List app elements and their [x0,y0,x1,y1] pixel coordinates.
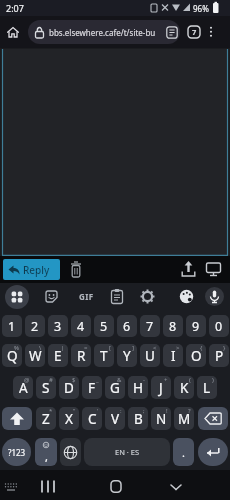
button[interactable] [3,481,19,493]
staticText: GIF [79,291,94,302]
button[interactable]: F [82,376,102,399]
button[interactable]: 5 [94,315,114,337]
staticText: D [64,379,74,397]
staticText: ; [143,407,145,415]
button[interactable]: 8 [163,315,183,337]
button[interactable]: S [36,376,56,399]
button[interactable]: W [25,344,45,367]
button[interactable]: E [48,344,68,367]
staticText: 2:07 [6,2,24,14]
staticText: E [54,347,62,365]
button[interactable]: B [128,407,148,430]
button[interactable]: 1 [2,315,22,337]
staticText: 9 [192,318,200,335]
staticText: Y [123,347,131,365]
button[interactable]: X [59,407,79,430]
button[interactable]: O [186,344,206,367]
staticText: : [120,407,122,415]
button[interactable] [204,22,218,42]
button[interactable]: ?123 [2,438,31,466]
staticText: J [159,379,163,397]
button[interactable]: , [35,438,57,466]
button[interactable]: GIF [75,289,97,303]
staticText: Z [42,410,50,428]
button[interactable]: T [94,344,114,367]
button[interactable]: H [128,376,148,399]
staticText: + [164,376,168,384]
button[interactable] [179,289,194,304]
button[interactable]: M [174,407,194,430]
button[interactable] [5,285,29,309]
button[interactable]: 6 [117,315,137,337]
staticText: 3 [54,318,62,335]
button[interactable]: I [163,344,183,367]
staticText: W [29,347,42,365]
button[interactable]: bbs.elsewhere.cafe/t/site-bu [28,20,180,44]
button[interactable] [108,480,124,493]
button[interactable]: 7 [187,25,201,39]
staticText: ? [188,407,191,415]
button[interactable] [168,482,184,492]
button[interactable] [198,438,228,466]
button[interactable] [205,261,222,278]
staticText: 1 [8,318,16,335]
button[interactable]: P [209,344,229,367]
staticText: _ [96,376,99,384]
button[interactable] [38,480,58,493]
staticText: X [65,410,73,428]
staticText: Reply [23,263,50,277]
staticText: \ [39,344,42,352]
staticText: [ [109,344,111,352]
staticText: A [19,379,28,397]
staticText: B [134,410,143,428]
button[interactable]: L [197,376,217,399]
button[interactable]: 2 [25,315,45,337]
staticText: I [171,347,176,365]
staticText: bbs.elsewhere.cafe/t/site-bu [49,27,156,38]
button[interactable] [110,288,124,305]
button[interactable]: Z [36,407,56,430]
staticText: * [49,407,53,415]
button[interactable]: Reply [3,259,60,280]
button[interactable] [6,25,20,40]
staticText: { [200,344,203,352]
button[interactable]: 9 [186,315,206,337]
button[interactable] [205,287,224,306]
button[interactable]: V [105,407,125,430]
button[interactable]: R [71,344,91,367]
button[interactable]: J [151,376,171,399]
staticText: ! [166,407,168,415]
button[interactable] [198,407,228,430]
staticText: T [100,347,108,365]
staticText: 8 [169,318,177,335]
button[interactable]: N [151,407,171,430]
button[interactable]: 3 [48,315,68,337]
staticText: C [88,410,97,428]
button[interactable]: G [105,376,125,399]
button[interactable]: 4 [71,315,91,337]
button[interactable]: U [140,344,160,367]
staticText: ] [132,344,134,352]
button[interactable] [181,260,196,279]
button[interactable]: Y [117,344,137,367]
staticText: L [203,379,211,397]
button[interactable]: EN · ES [84,438,170,466]
button[interactable] [44,289,59,304]
button[interactable] [69,260,83,279]
button[interactable]: D [59,376,79,399]
staticText: G [110,379,120,397]
staticText: V [111,410,120,428]
staticText: ( [189,376,191,384]
button[interactable]: . [173,438,194,466]
staticText: 5 [100,318,108,335]
button[interactable]: 7 [140,315,160,337]
button[interactable]: Q [2,344,22,367]
button[interactable] [140,289,155,304]
button[interactable]: 0 [209,315,229,337]
staticText: K [180,379,189,397]
button[interactable]: C [82,407,102,430]
button[interactable] [60,438,81,466]
button[interactable]: A [13,376,33,399]
button[interactable] [2,407,32,430]
button[interactable]: K [174,376,194,399]
